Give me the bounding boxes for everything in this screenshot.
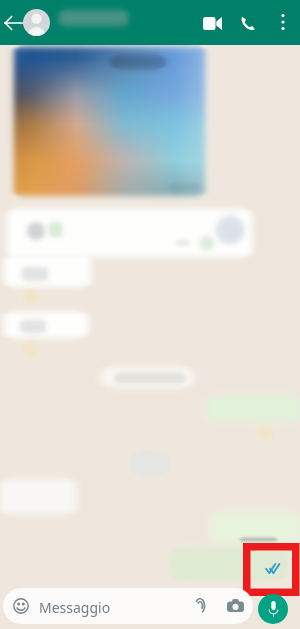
button[interactable]: Record voice message: [258, 594, 288, 624]
button[interactable]: Messaggio: [3, 588, 253, 624]
button[interactable]: Attach: [191, 597, 209, 615]
button[interactable]: Voice call: [230, 5, 266, 41]
button[interactable]: Photo message: [14, 47, 205, 196]
button[interactable]: Back: [1, 10, 27, 36]
button[interactable]: More options: [266, 5, 300, 39]
button[interactable]: Contact profile: [23, 9, 50, 36]
staticText: Messaggio: [39, 598, 111, 617]
button[interactable]: Video call: [194, 5, 230, 41]
button[interactable]: Camera: [227, 599, 244, 613]
